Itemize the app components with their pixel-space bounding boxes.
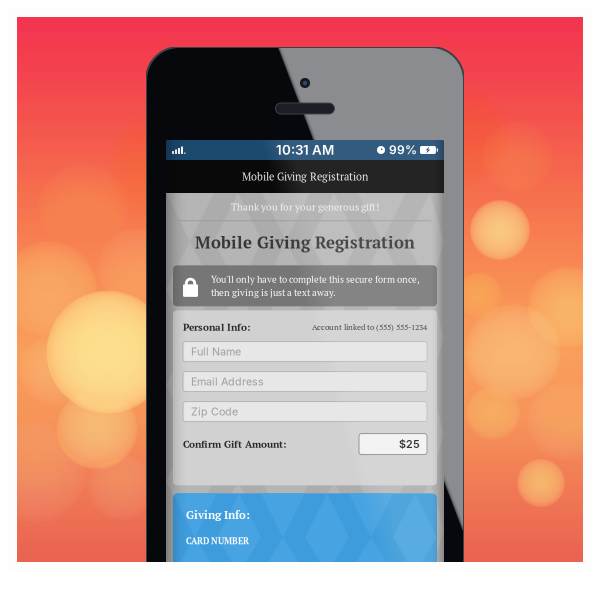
staticText: Email Address	[191, 375, 264, 388]
staticText: Full Name	[191, 345, 241, 358]
staticText: Giving Info:	[186, 507, 250, 522]
staticText: Zip Code	[191, 405, 238, 418]
staticText: 10:31 AM	[276, 142, 334, 158]
staticText: 99%	[389, 143, 417, 157]
staticText: Personal Info:	[183, 320, 250, 333]
button[interactable]: Full Name	[183, 342, 427, 362]
staticText: Thank you for your generous gift!	[231, 200, 379, 213]
staticText: then giving is just a text away.	[211, 286, 336, 299]
button[interactable]: $25	[359, 434, 427, 455]
staticText: Account linked to (555) 555-1234	[312, 322, 427, 332]
button[interactable]: Email Address	[183, 372, 427, 392]
staticText: $25	[399, 438, 420, 450]
button[interactable]: Zip Code	[183, 402, 427, 422]
staticText: Confirm Gift Amount:	[183, 437, 286, 451]
staticText: CARD NUMBER	[186, 535, 249, 547]
staticText: Mobile Giving Registration	[242, 169, 368, 183]
staticText: Mobile Giving Registration	[195, 231, 415, 253]
staticText: You'll only have to complete this secure…	[211, 273, 420, 285]
